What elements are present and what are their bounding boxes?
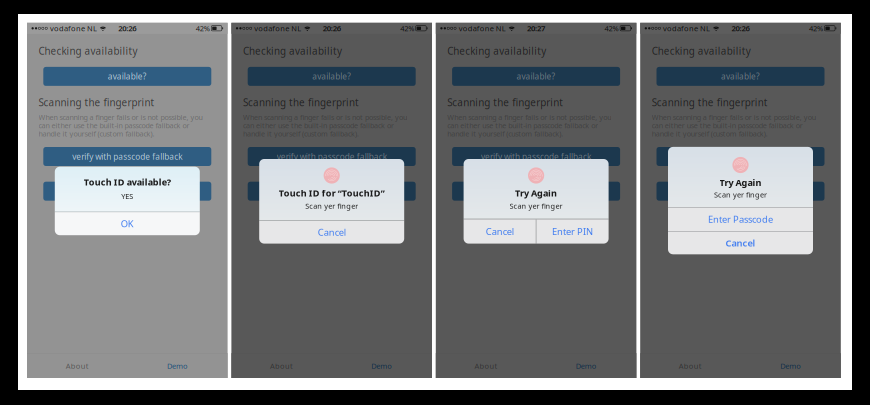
button[interactable]: About xyxy=(231,353,332,378)
staticText: Scanning the fingerprint xyxy=(243,96,359,109)
staticText: available? xyxy=(108,71,147,82)
staticText: About xyxy=(66,361,89,371)
staticText: Cancel xyxy=(318,226,346,238)
button[interactable]: verify with custom fallback xyxy=(452,182,620,201)
staticText: OK xyxy=(121,217,134,230)
staticText: vodafone NL xyxy=(459,23,506,33)
staticText: About xyxy=(474,361,497,371)
button[interactable]: verify with passcode fallback xyxy=(452,147,620,166)
staticText: 42% xyxy=(809,23,823,33)
staticText: 42% xyxy=(196,23,210,33)
staticText: Demo xyxy=(167,361,188,371)
button[interactable]: available? xyxy=(452,67,620,86)
staticText: available? xyxy=(517,71,556,82)
staticText: Demo xyxy=(371,361,392,371)
staticText: verify with passcode fallback xyxy=(685,151,795,162)
staticText: handle it yourself (custom fallback). xyxy=(652,129,768,138)
staticText: Demo xyxy=(576,361,597,371)
button[interactable]: Enter PIN xyxy=(536,219,609,244)
staticText: Cancel xyxy=(725,236,755,249)
staticText: 42% xyxy=(400,23,414,33)
staticText: 20:26 xyxy=(323,23,341,33)
staticText: vodafone NL xyxy=(254,23,301,33)
button[interactable]: Demo xyxy=(740,353,841,378)
staticText: can either use the built-in passcode fal… xyxy=(652,120,803,130)
button[interactable]: verify with passcode fallback xyxy=(43,147,211,166)
button[interactable]: Cancel xyxy=(464,219,536,244)
staticText: Cancel xyxy=(486,225,514,238)
staticText: can either use the built-in passcode fal… xyxy=(243,120,394,130)
staticText: vodafone NL xyxy=(663,23,710,33)
staticText: About xyxy=(679,361,702,371)
staticText: 20:26 xyxy=(118,23,136,33)
button[interactable]: verify with passcode fallback xyxy=(656,147,824,166)
staticText: When scanning a finger fails or is not p… xyxy=(652,112,816,122)
staticText: available? xyxy=(312,71,351,82)
staticText: verify with custom fallback xyxy=(76,186,178,197)
staticText: verify with custom fallback xyxy=(485,186,587,197)
staticText: Scanning the fingerprint xyxy=(652,96,768,109)
staticText: Try Again xyxy=(719,176,761,189)
staticText: Touch ID for “TouchID” xyxy=(279,187,385,199)
staticText: available? xyxy=(721,71,760,82)
staticText: verify with passcode fallback xyxy=(277,151,387,162)
button[interactable]: available? xyxy=(248,67,416,86)
button[interactable]: verify with custom fallback xyxy=(43,182,211,201)
staticText: verify with custom fallback xyxy=(689,186,791,197)
staticText: can either use the built-in passcode fal… xyxy=(447,120,598,130)
staticText: When scanning a finger fails or is not p… xyxy=(243,112,407,122)
staticText: Checking availability xyxy=(652,44,751,57)
staticText: Scan yer finger xyxy=(714,190,767,200)
button[interactable]: Cancel xyxy=(259,221,404,244)
staticText: When scanning a finger fails or is not p… xyxy=(38,112,202,122)
staticText: Scan yer finger xyxy=(305,201,358,211)
staticText: When scanning a finger fails or is not p… xyxy=(447,112,611,122)
staticText: handle it yourself (custom fallback). xyxy=(243,129,359,138)
button[interactable]: verify with passcode fallback xyxy=(248,147,416,166)
staticText: Scanning the fingerprint xyxy=(447,96,563,109)
staticText: Checking availability xyxy=(243,44,342,57)
staticText: can either use the built-in passcode fal… xyxy=(38,120,189,130)
button[interactable]: About xyxy=(436,353,536,378)
button[interactable]: Enter Passcode xyxy=(668,207,813,231)
staticText: 20:26 xyxy=(731,23,749,33)
staticText: Enter PIN xyxy=(552,225,593,238)
button[interactable]: Cancel xyxy=(668,231,813,254)
staticText: Scan yer finger xyxy=(510,201,563,211)
staticText: Demo xyxy=(780,361,801,371)
button[interactable]: About xyxy=(27,353,127,378)
staticText: Scanning the fingerprint xyxy=(38,96,154,109)
staticText: YES xyxy=(121,191,133,201)
staticText: 42% xyxy=(605,23,619,33)
button[interactable]: verify with custom fallback xyxy=(248,182,416,201)
staticText: Enter Passcode xyxy=(708,213,773,226)
staticText: verify with passcode fallback xyxy=(72,151,182,162)
button[interactable]: OK xyxy=(55,212,200,235)
staticText: handle it yourself (custom fallback). xyxy=(447,129,563,138)
button[interactable]: verify with custom fallback xyxy=(656,182,824,201)
staticText: verify with passcode fallback xyxy=(481,151,591,162)
staticText: 20:27 xyxy=(527,23,545,33)
staticText: Try Again xyxy=(515,187,557,199)
button[interactable]: Demo xyxy=(536,353,636,378)
button[interactable]: Demo xyxy=(127,353,228,378)
button[interactable]: Demo xyxy=(332,353,432,378)
staticText: verify with custom fallback xyxy=(281,186,383,197)
button[interactable]: available? xyxy=(656,67,824,86)
staticText: Checking availability xyxy=(447,44,546,57)
button[interactable]: About xyxy=(640,353,740,378)
button[interactable]: available? xyxy=(43,67,211,86)
staticText: Touch ID available? xyxy=(84,176,171,188)
staticText: handle it yourself (custom fallback). xyxy=(38,129,154,138)
staticText: About xyxy=(270,361,293,371)
staticText: vodafone NL xyxy=(50,23,97,33)
staticText: Checking availability xyxy=(38,44,137,57)
